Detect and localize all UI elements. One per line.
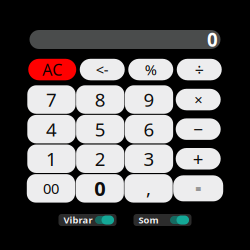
button[interactable]: Som [133, 214, 191, 226]
button[interactable]: 3 [125, 144, 173, 173]
staticText: 2 [95, 146, 106, 171]
button[interactable]: 1 [27, 144, 76, 173]
button[interactable]: 7 [27, 85, 76, 114]
button[interactable]: − [174, 115, 223, 143]
button[interactable]: 0 [76, 174, 124, 203]
staticText: Som [138, 214, 158, 226]
staticText: 00 [43, 179, 59, 198]
staticText: 6 [144, 117, 155, 142]
staticText: 9 [144, 87, 155, 112]
staticText: % [145, 60, 157, 79]
button[interactable]: 5 [76, 115, 124, 143]
staticText: + [193, 146, 204, 171]
staticText: 3 [144, 146, 155, 171]
button[interactable]: % [128, 59, 173, 80]
staticText: × [194, 90, 202, 109]
staticText: − [193, 118, 203, 141]
staticText: Vibrar [63, 214, 92, 226]
staticText: 7 [46, 87, 57, 112]
button[interactable]: 9 [125, 85, 173, 114]
staticText: 1 [46, 146, 57, 171]
staticText: 4 [46, 117, 57, 142]
button[interactable]: 00 [27, 174, 75, 203]
staticText: 0 [94, 175, 105, 202]
button[interactable]: + [174, 144, 223, 173]
button[interactable]: 8 [76, 85, 124, 114]
button[interactable]: 6 [125, 115, 173, 143]
button[interactable]: , [124, 174, 173, 203]
staticText: ÷ [195, 59, 204, 80]
staticText: = [195, 181, 201, 195]
button[interactable]: × [174, 85, 223, 114]
button[interactable]: <- [80, 59, 125, 80]
staticText: 5 [95, 117, 106, 142]
staticText: 8 [95, 87, 106, 112]
button[interactable]: ÷ [177, 59, 222, 80]
staticText: , [146, 176, 151, 201]
button[interactable]: 4 [27, 115, 76, 143]
button[interactable]: = [173, 174, 223, 203]
button[interactable]: Vibrar [58, 214, 116, 226]
button[interactable]: AC [28, 59, 76, 80]
staticText: 0 [207, 27, 218, 52]
staticText: AC [42, 59, 62, 80]
button[interactable]: 2 [76, 144, 124, 173]
staticText: <- [96, 60, 109, 79]
